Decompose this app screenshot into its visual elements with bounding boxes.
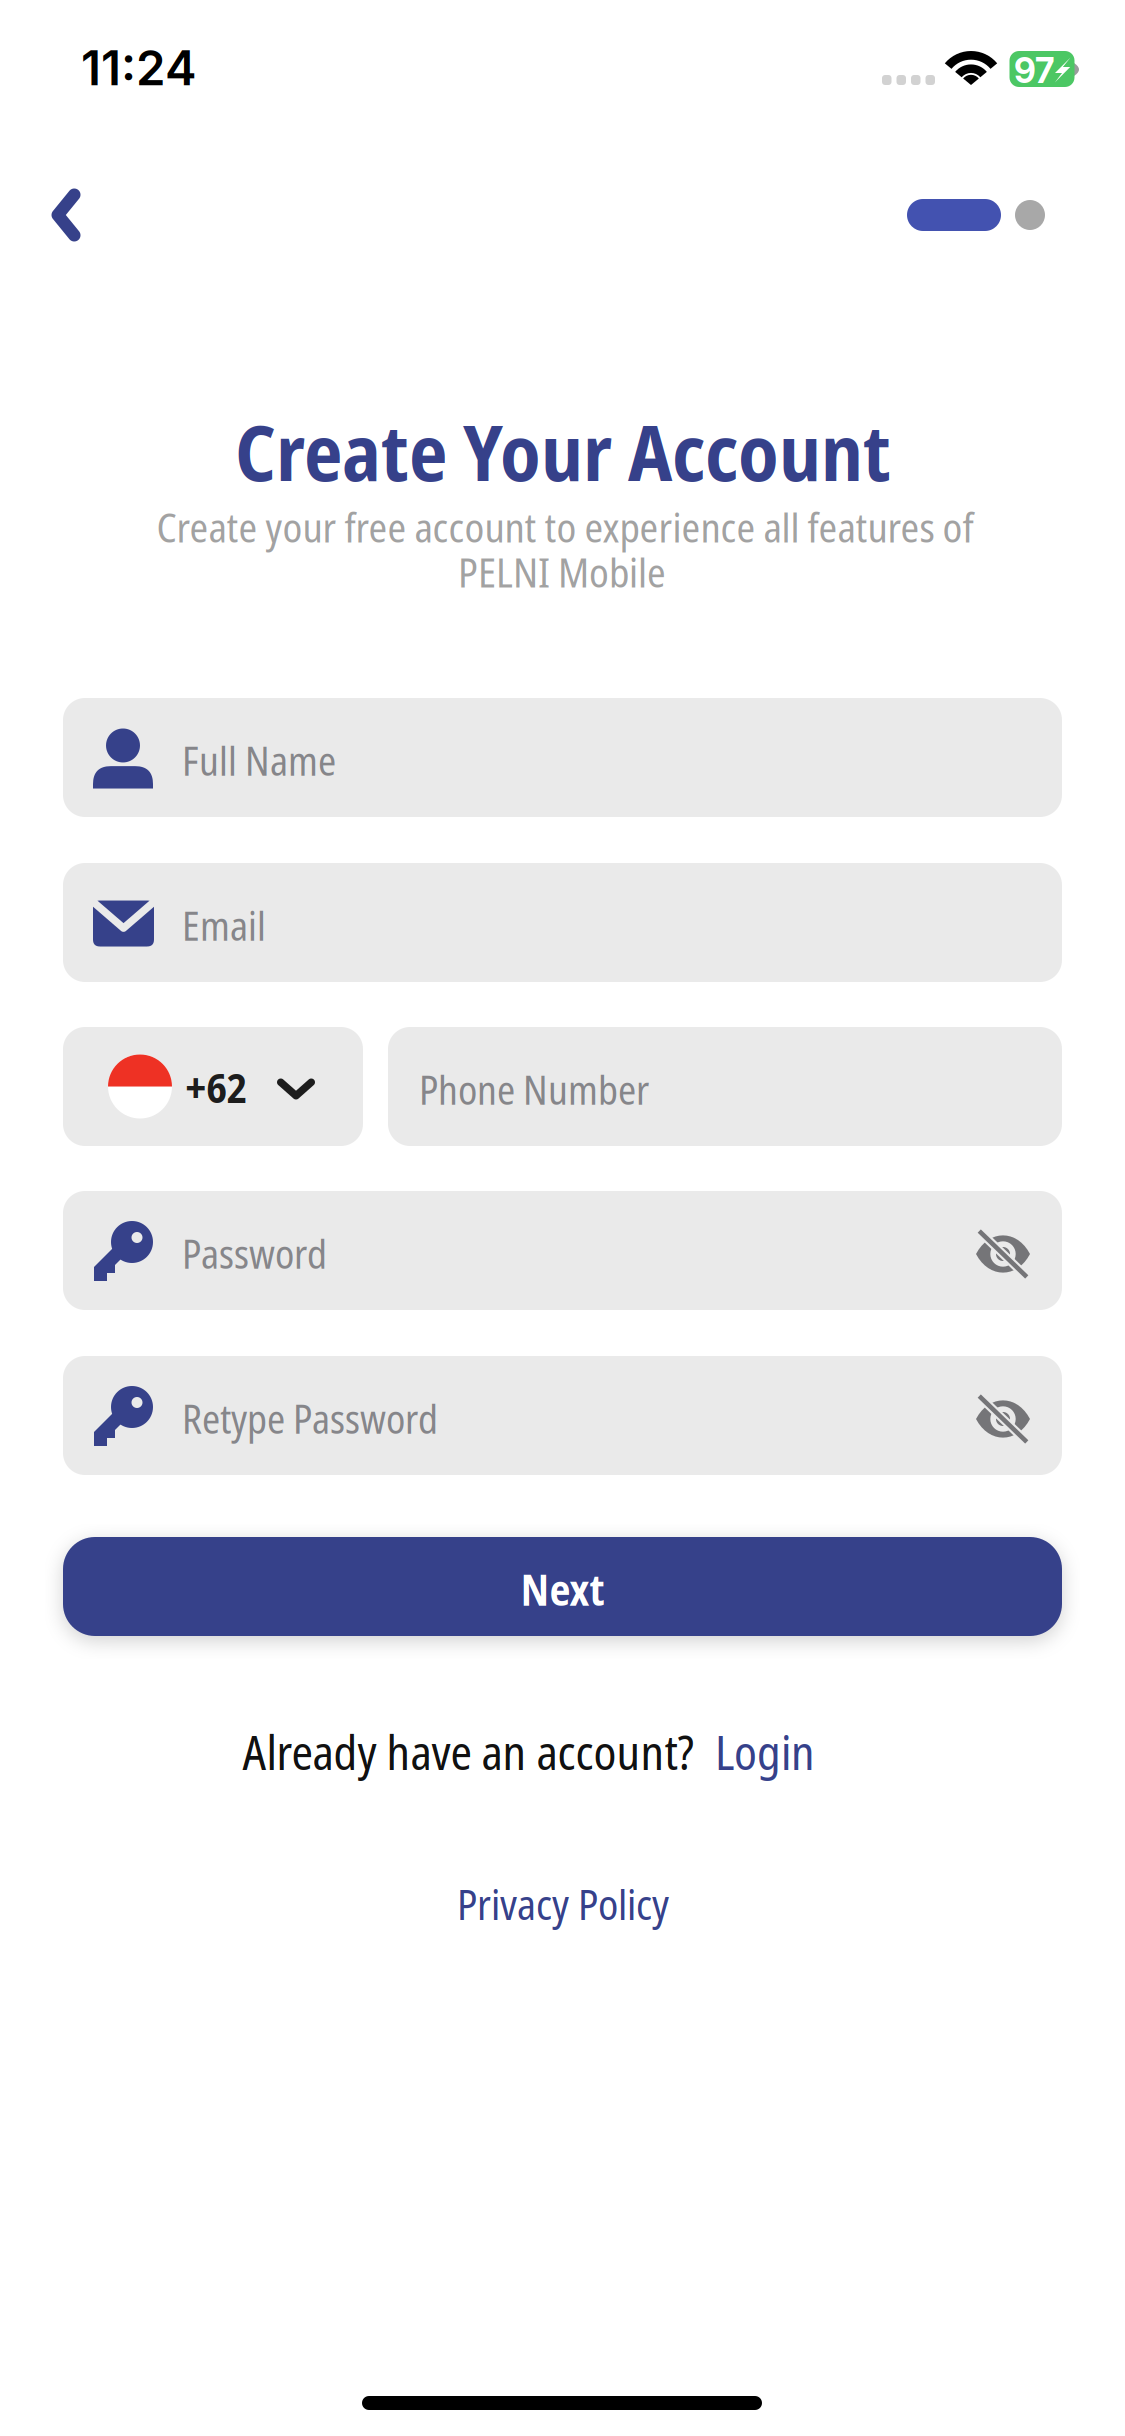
staticText: Full Name: [182, 734, 336, 787]
button[interactable]: Privacy Policy: [433, 1868, 693, 1940]
staticText: Retype Password: [182, 1392, 438, 1445]
staticText: Create your free account to experience a…: [156, 500, 973, 554]
staticText: 11:24: [81, 39, 197, 97]
staticText: Password: [182, 1227, 327, 1280]
staticText: Email: [182, 899, 266, 952]
staticText: PELNI Mobile: [458, 545, 666, 599]
staticText: Phone Number: [419, 1063, 649, 1116]
staticText: Next: [520, 1561, 604, 1618]
staticText: 97: [1014, 49, 1054, 91]
button[interactable]: Next: [63, 1537, 1062, 1636]
staticText: +62: [185, 1059, 246, 1115]
staticText: Already have an account?: [242, 1720, 693, 1784]
staticText: Login: [715, 1720, 815, 1784]
button[interactable]: Select country calling code, currently +…: [63, 1027, 363, 1146]
button[interactable]: Show password: [955, 1206, 1051, 1302]
button[interactable]: Login: [705, 1714, 825, 1790]
staticText: Create Your Account: [235, 398, 891, 503]
staticText: Privacy Policy: [457, 1876, 669, 1932]
button[interactable]: Show retyped password: [955, 1371, 1051, 1467]
button[interactable]: Back: [20, 169, 112, 261]
